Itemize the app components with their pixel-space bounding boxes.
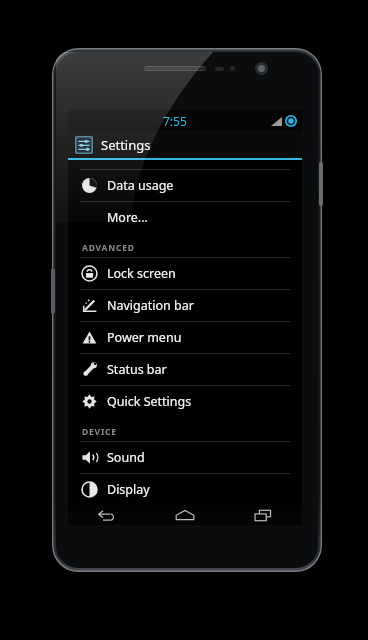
- button[interactable]: Home: [146, 505, 224, 525]
- button[interactable]: Data usage: [68, 170, 302, 201]
- staticText: Display: [107, 481, 150, 498]
- button[interactable]: Display: [68, 474, 302, 505]
- staticText: Quick Settings: [107, 393, 192, 410]
- button[interactable]: Sound: [68, 442, 302, 473]
- button[interactable]: Recent apps: [224, 505, 302, 525]
- staticText: Data usage: [107, 177, 174, 194]
- staticText: Status bar: [107, 361, 167, 378]
- button[interactable]: Quick Settings: [68, 386, 302, 417]
- button[interactable]: Power menu: [68, 322, 302, 353]
- staticText: ADVANCED: [82, 242, 135, 254]
- staticText: Power menu: [107, 329, 182, 346]
- staticText: Navigation bar: [107, 297, 194, 314]
- button[interactable]: More...: [68, 202, 302, 233]
- button[interactable]: Settings: [68, 131, 302, 158]
- staticText: DEVICE: [82, 426, 117, 438]
- staticText: Settings: [101, 136, 151, 154]
- staticText: 7:55: [163, 113, 187, 129]
- button[interactable]: Back: [68, 505, 146, 525]
- staticText: Sound: [107, 449, 145, 466]
- button[interactable]: Navigation bar: [68, 290, 302, 321]
- button[interactable]: Status bar: [68, 354, 302, 385]
- staticText: Lock screen: [107, 265, 176, 282]
- staticText: More...: [107, 209, 148, 226]
- button[interactable]: Lock screen: [68, 258, 302, 289]
